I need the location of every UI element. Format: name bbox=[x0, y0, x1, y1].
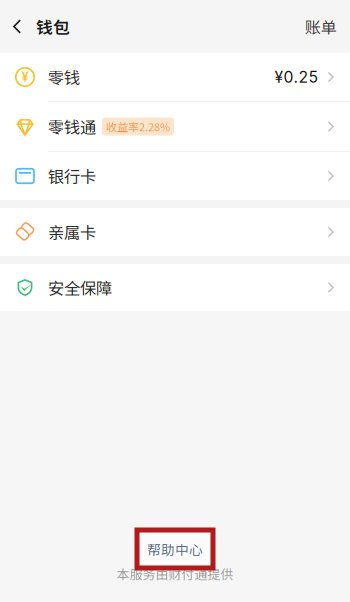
staticText: 零钱通 bbox=[48, 115, 96, 138]
button[interactable]: 亲属卡 bbox=[0, 208, 350, 256]
staticText: ¥0.25 bbox=[274, 67, 318, 86]
button[interactable]: 帮助中心 bbox=[137, 535, 213, 563]
staticText: 零钱 bbox=[48, 65, 80, 89]
staticText: 账单 bbox=[305, 15, 337, 38]
staticText: ¥ bbox=[21, 69, 28, 85]
staticText: 安全保障 bbox=[48, 276, 112, 299]
staticText: 帮助中心 bbox=[147, 539, 203, 559]
button[interactable]: 银行卡 bbox=[0, 152, 350, 200]
staticText: 亲属卡 bbox=[48, 220, 96, 244]
staticText: 钱包 bbox=[36, 14, 70, 38]
button[interactable]: 账单 bbox=[291, 0, 350, 53]
staticText: 本服务由财付通提供 bbox=[116, 564, 233, 583]
button[interactable]: 零钱通 bbox=[0, 102, 350, 151]
button[interactable]: ¥ bbox=[0, 53, 350, 101]
staticText: 收益率2.28% bbox=[106, 118, 170, 134]
button[interactable]: 钱包 bbox=[0, 0, 82, 53]
staticText: 银行卡 bbox=[48, 164, 96, 188]
staticText: 帮助中心 bbox=[147, 539, 203, 559]
button[interactable]: 安全保障 bbox=[0, 264, 350, 311]
